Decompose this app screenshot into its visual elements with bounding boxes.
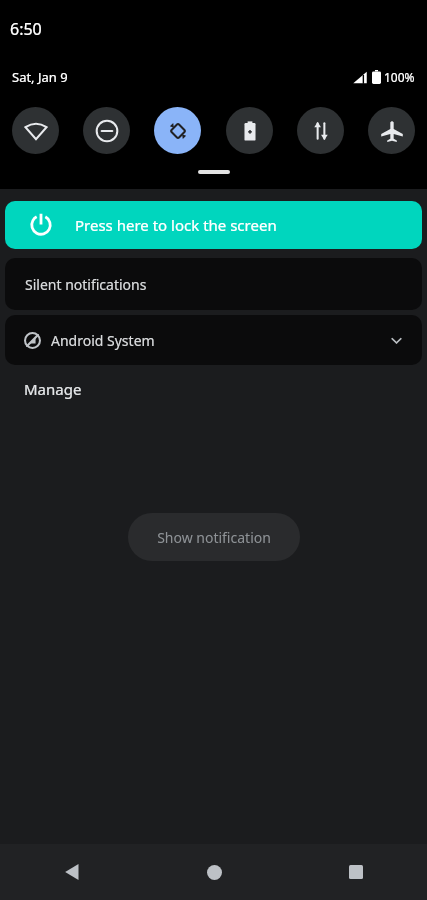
staticText: Sat, Jan 9: [12, 68, 68, 86]
staticText: Press here to lock the screen: [75, 215, 277, 235]
button[interactable]: Recent apps: [285, 844, 427, 900]
button[interactable]: Battery saver: [226, 107, 273, 154]
button[interactable]: Expand: [379, 323, 413, 357]
button[interactable]: Home: [143, 844, 285, 900]
button[interactable]: Do not disturb: [83, 107, 130, 154]
button[interactable]: Silent notifications: [5, 258, 422, 310]
staticText: Show notification: [157, 528, 271, 547]
staticText: 100%: [384, 69, 415, 85]
button[interactable]: Back: [0, 844, 143, 900]
staticText: Manage: [24, 379, 82, 399]
button[interactable]: Press here to lock the screen: [5, 201, 422, 249]
staticText: Android System: [51, 331, 155, 350]
button[interactable]: Wi-Fi: [12, 107, 59, 154]
button[interactable]: Airplane mode: [368, 107, 415, 154]
button[interactable]: Show notification: [128, 513, 300, 561]
button[interactable]: Auto rotate: [154, 107, 201, 154]
button[interactable]: Manage: [14, 372, 92, 406]
button[interactable]: Mobile data: [297, 107, 344, 154]
staticText: 6:50: [10, 18, 42, 40]
staticText: Silent notifications: [25, 275, 147, 294]
button[interactable]: Android System: [5, 315, 422, 365]
